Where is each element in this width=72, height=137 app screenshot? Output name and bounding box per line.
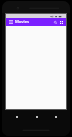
button[interactable]: More options	[58, 19, 64, 25]
button[interactable]: Search	[52, 19, 58, 25]
button[interactable]: Back	[14, 114, 19, 119]
button[interactable]: Home	[34, 114, 39, 119]
button[interactable]: Recent apps	[53, 114, 58, 119]
button[interactable]: Open navigation menu	[8, 19, 14, 25]
staticText: Movies	[15, 19, 52, 25]
